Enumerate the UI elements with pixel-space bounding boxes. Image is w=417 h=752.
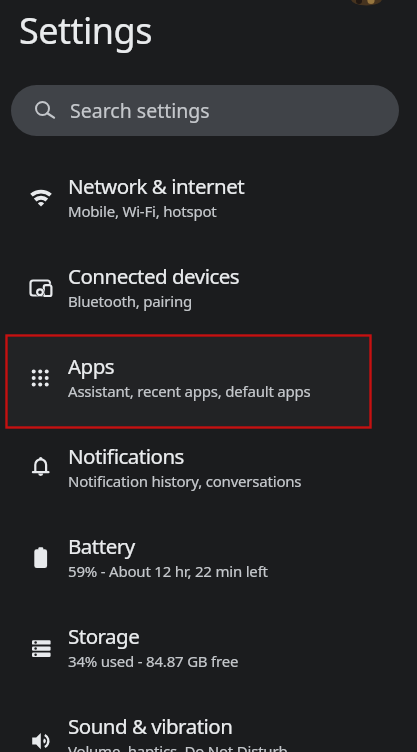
button[interactable]: Search settings <box>11 85 399 136</box>
staticText: Mobile, Wi-Fi, hotspot <box>68 201 217 221</box>
staticText: Sound & vibration <box>68 712 233 740</box>
staticText: Battery <box>68 532 135 560</box>
staticText: Connected devices <box>68 262 240 290</box>
staticText: Network & internet <box>68 172 245 200</box>
staticText: Storage <box>68 622 140 650</box>
button[interactable]: Storage <box>0 613 417 683</box>
staticText: 34% used - 84.87 GB free <box>68 651 239 671</box>
staticText: 59% - About 12 hr, 22 min left <box>68 561 268 581</box>
button[interactable]: Apps <box>0 343 417 413</box>
staticText: Assistant, recent apps, default apps <box>68 381 311 401</box>
staticText: Bluetooth, pairing <box>68 291 192 311</box>
staticText: Notifications <box>68 442 184 470</box>
button[interactable]: Battery <box>0 523 417 593</box>
staticText: Search settings <box>70 97 210 124</box>
button[interactable]: Notifications <box>0 433 417 503</box>
staticText: Apps <box>68 352 115 380</box>
button[interactable]: Network & internet <box>0 163 417 233</box>
button[interactable]: Sound & vibration <box>0 703 417 752</box>
button[interactable]: Connected devices <box>0 253 417 323</box>
staticText: Volume, haptics, Do Not Disturb <box>68 741 288 752</box>
staticText: Notification history, conversations <box>68 471 302 491</box>
staticText: Settings <box>19 6 152 55</box>
